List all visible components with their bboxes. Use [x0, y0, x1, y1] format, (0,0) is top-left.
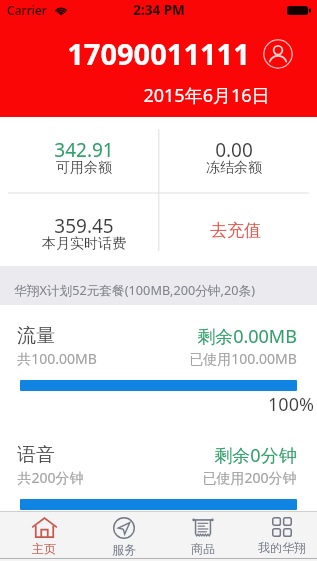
- staticText: 0.00: [215, 137, 253, 163]
- button[interactable]: 服务: [84, 511, 163, 561]
- staticText: 剩余0.00MB: [197, 324, 297, 349]
- staticText: 共200分钟: [17, 468, 84, 487]
- button[interactable]: 359.45: [10, 198, 158, 271]
- staticText: 2:34 PM: [133, 1, 185, 19]
- staticText: 已使用100.00MB: [189, 349, 297, 368]
- button[interactable]: 342.91: [10, 121, 158, 197]
- staticText: 100%: [268, 392, 314, 417]
- button[interactable]: 0.00: [158, 121, 310, 197]
- staticText: 主页: [32, 541, 56, 556]
- staticText: Carrier: [7, 2, 47, 18]
- staticText: 359.45: [54, 213, 114, 239]
- staticText: 流量: [17, 324, 55, 348]
- button[interactable]: 主页: [4, 511, 84, 561]
- staticText: 已使用200分钟: [202, 468, 297, 487]
- staticText: 本月实时话费: [42, 235, 126, 253]
- staticText: 可用余额: [56, 159, 112, 177]
- staticText: 服务: [112, 542, 136, 557]
- staticText: 冻结余额: [206, 159, 262, 177]
- staticText: 商品: [191, 541, 215, 556]
- staticText: 语音: [17, 443, 55, 467]
- staticText: 共100.00MB: [17, 349, 97, 368]
- staticText: 剩余0分钟: [214, 443, 297, 468]
- button[interactable]: 商品: [163, 511, 242, 561]
- staticText: 17090011111: [67, 34, 250, 73]
- staticText: 华翔X计划52元套餐(100MB,200分钟,20条): [14, 281, 255, 298]
- button[interactable]: Account: [263, 39, 293, 69]
- button[interactable]: 我的华翔: [242, 511, 317, 561]
- staticText: 342.91: [54, 137, 114, 163]
- staticText: 我的华翔: [258, 540, 306, 555]
- button[interactable]: 去充值: [158, 194, 313, 267]
- staticText: 2015年6月16日: [143, 83, 270, 108]
- staticText: 去充值: [210, 220, 261, 241]
